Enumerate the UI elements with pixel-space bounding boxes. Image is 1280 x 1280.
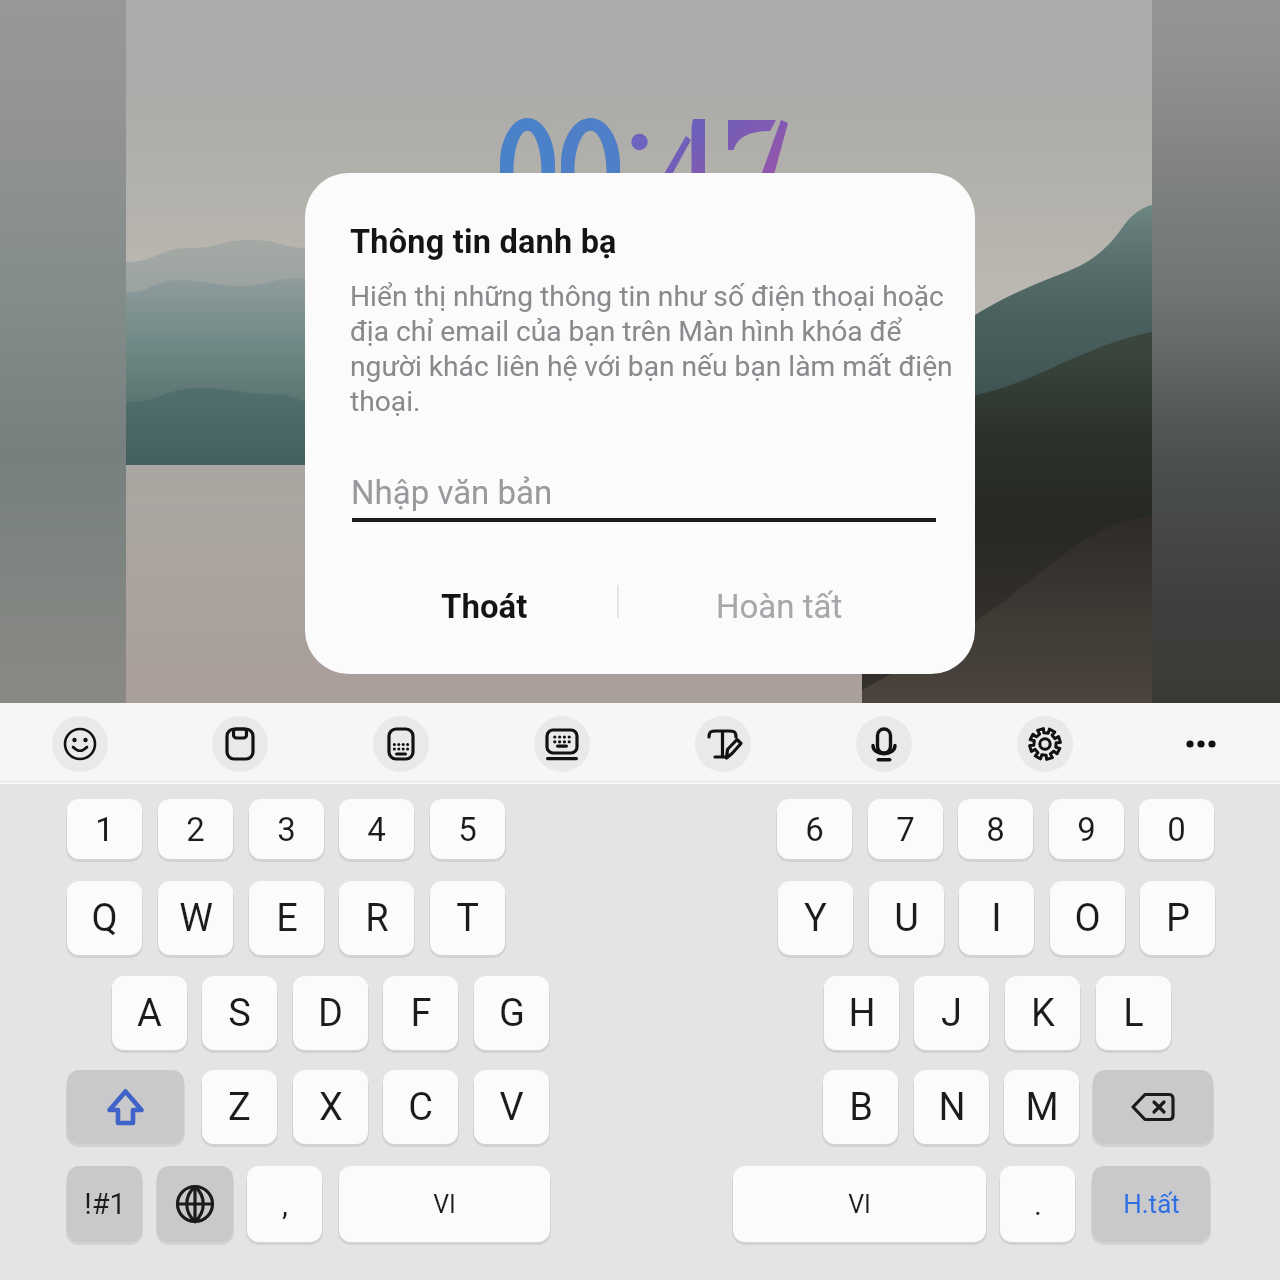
button[interactable]: A: [112, 976, 187, 1050]
button[interactable]: One-handed keyboard: [373, 716, 429, 772]
button[interactable]: Q: [67, 881, 142, 955]
button[interactable]: More options: [1173, 716, 1229, 772]
button[interactable]: D: [293, 976, 368, 1050]
button[interactable]: U: [869, 881, 944, 955]
staticText: V: [499, 1085, 524, 1130]
button[interactable]: 3: [249, 799, 324, 859]
button[interactable]: Change language: [157, 1166, 233, 1242]
button[interactable]: ,: [247, 1166, 322, 1242]
button[interactable]: S: [202, 976, 277, 1050]
staticText: R: [365, 896, 389, 941]
button[interactable]: M: [1004, 1070, 1079, 1144]
button[interactable]: Hoàn tất: [618, 565, 940, 647]
button[interactable]: W: [158, 881, 233, 955]
button[interactable]: F: [383, 976, 458, 1050]
button[interactable]: VI: [733, 1166, 986, 1242]
staticText: H.tất: [1123, 1189, 1180, 1219]
staticText: 6: [805, 810, 824, 849]
button[interactable]: Backspace: [1093, 1070, 1213, 1144]
button[interactable]: R: [339, 881, 414, 955]
button[interactable]: H: [824, 976, 899, 1050]
button[interactable]: 6: [777, 799, 852, 859]
button[interactable]: 0: [1139, 799, 1214, 859]
button[interactable]: Clipboard: [212, 716, 268, 772]
staticText: A: [137, 991, 162, 1036]
button[interactable]: 7: [868, 799, 943, 859]
button[interactable]: E: [249, 881, 324, 955]
button[interactable]: I: [959, 881, 1034, 955]
button[interactable]: 5: [430, 799, 505, 859]
button[interactable]: K: [1005, 976, 1080, 1050]
staticText: T: [456, 896, 479, 941]
button[interactable]: 8: [958, 799, 1033, 859]
staticText: H: [848, 991, 876, 1036]
button[interactable]: .: [1000, 1166, 1075, 1242]
button[interactable]: VI: [339, 1166, 550, 1242]
staticText: 9: [1077, 810, 1096, 849]
button[interactable]: Handwriting: [695, 716, 751, 772]
staticText: Nhập văn bản: [351, 473, 553, 512]
button[interactable]: Y: [778, 881, 853, 955]
staticText: 5: [458, 810, 477, 849]
staticText: Thoát: [441, 587, 528, 626]
button[interactable]: X: [293, 1070, 368, 1144]
button[interactable]: V: [474, 1070, 549, 1144]
button[interactable]: Z: [202, 1070, 277, 1144]
staticText: W: [179, 896, 213, 941]
button[interactable]: L: [1096, 976, 1171, 1050]
staticText: 2: [186, 810, 205, 849]
staticText: O: [1074, 896, 1101, 941]
button[interactable]: P: [1140, 881, 1215, 955]
button[interactable]: 1: [67, 799, 142, 859]
staticText: I: [991, 896, 1002, 941]
button[interactable]: !#1: [67, 1166, 142, 1242]
button[interactable]: J: [914, 976, 989, 1050]
staticText: X: [319, 1085, 343, 1130]
staticText: 3: [277, 810, 296, 849]
staticText: U: [894, 896, 919, 941]
button[interactable]: Thoát: [337, 565, 631, 647]
staticText: Y: [804, 896, 827, 941]
button[interactable]: Shift: [67, 1070, 184, 1144]
staticText: K: [1031, 991, 1055, 1036]
staticText: B: [849, 1085, 873, 1130]
staticText: M: [1025, 1085, 1059, 1130]
staticText: .: [1034, 1187, 1042, 1222]
staticText: J: [941, 991, 962, 1036]
staticText: Hoàn tất: [716, 587, 843, 626]
button[interactable]: B: [823, 1070, 898, 1144]
staticText: Q: [91, 896, 118, 941]
button[interactable]: 2: [158, 799, 233, 859]
button[interactable]: T: [430, 881, 505, 955]
staticText: G: [499, 991, 525, 1036]
staticText: Hiển thị những thông tin như số điện tho…: [350, 280, 965, 417]
staticText: 0: [1167, 810, 1186, 849]
staticText: VI: [433, 1190, 456, 1219]
staticText: Z: [228, 1085, 251, 1130]
staticText: 7: [896, 810, 915, 849]
staticText: E: [276, 896, 298, 941]
staticText: N: [938, 1085, 966, 1130]
staticText: !#1: [84, 1187, 126, 1221]
staticText: ,: [282, 1187, 288, 1222]
staticText: 8: [986, 810, 1005, 849]
button[interactable]: Settings: [1017, 716, 1073, 772]
staticText: C: [408, 1085, 433, 1130]
staticText: 1: [95, 810, 114, 849]
button[interactable]: Voice input: [856, 716, 912, 772]
button[interactable]: O: [1050, 881, 1125, 955]
button[interactable]: C: [383, 1070, 458, 1144]
staticText: P: [1166, 896, 1190, 941]
button[interactable]: 4: [339, 799, 414, 859]
staticText: F: [410, 991, 432, 1036]
button[interactable]: Emoji: [52, 716, 108, 772]
staticText: Thông tin danh bạ: [350, 223, 617, 261]
staticText: S: [228, 991, 251, 1036]
button[interactable]: N: [914, 1070, 989, 1144]
button[interactable]: 9: [1049, 799, 1124, 859]
staticText: 4: [367, 810, 386, 849]
button[interactable]: H.tất: [1092, 1166, 1210, 1242]
button[interactable]: G: [474, 976, 549, 1050]
button[interactable]: Split keyboard: [534, 716, 590, 772]
staticText: VI: [848, 1190, 871, 1219]
